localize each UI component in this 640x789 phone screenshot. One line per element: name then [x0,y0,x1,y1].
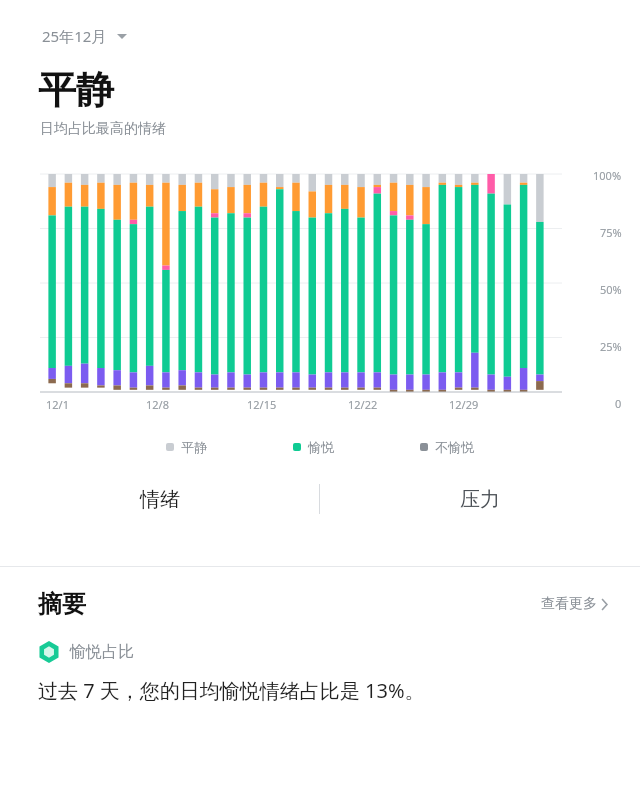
staticText: 摘要 [38,589,86,619]
button[interactable]: 25年12月 [40,24,129,48]
button[interactable]: 平静 [162,436,211,458]
staticText: 75% [600,225,622,240]
staticText: 0 [615,396,622,411]
staticText: 12/8 [146,397,169,412]
button[interactable]: 愉悦占比 [0,641,640,704]
staticText: 过去 7 天，您的日均愉悦情绪占比是 13%。 [38,677,425,704]
staticText: 50% [600,282,622,297]
staticText: 100% [593,168,622,183]
staticText: 愉悦占比 [70,642,134,662]
button[interactable]: 不愉悦 [416,436,478,458]
staticText: 12/15 [247,397,277,412]
button[interactable]: 查看更多 [535,591,614,617]
staticText: 压力 [460,487,500,512]
staticText: 情绪 [140,487,180,512]
button[interactable]: 情绪 [0,476,319,522]
staticText: 平静 [181,439,207,455]
staticText: 日均占比最高的情绪 [40,120,166,138]
staticText: 愉悦 [308,439,334,455]
staticText: 平静 [38,66,114,114]
button[interactable]: 愉悦 [289,436,338,458]
staticText: 不愉悦 [435,439,474,455]
staticText: 查看更多 [541,595,597,613]
staticText: 25% [600,339,622,354]
staticText: 12/29 [449,397,479,412]
button[interactable]: 压力 [320,476,640,522]
staticText: 12/22 [348,397,378,412]
staticText: 25年12月 [42,26,107,46]
staticText: 12/1 [46,397,69,412]
